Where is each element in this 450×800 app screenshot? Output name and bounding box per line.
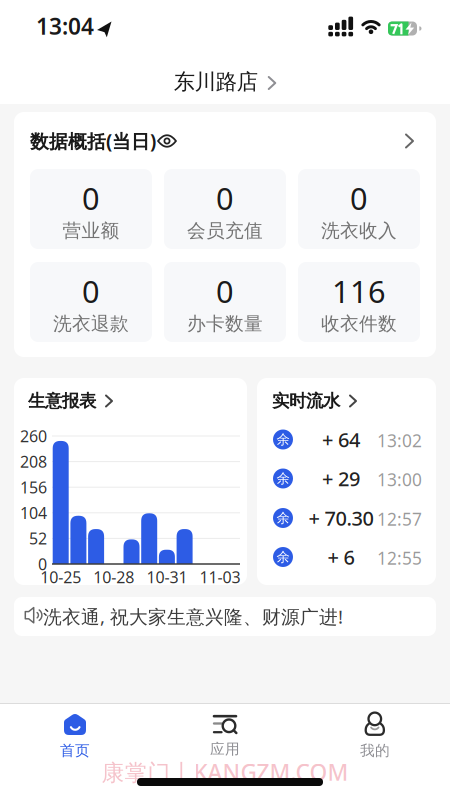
staticText: 办卡数量 (187, 312, 263, 335)
staticText: 0 (216, 178, 234, 218)
staticText: 康掌门丨KANGZM.COM (101, 757, 348, 787)
staticText: 余 (276, 431, 289, 448)
staticText: 余 (276, 549, 289, 565)
button[interactable]: 生意报表 (28, 390, 113, 412)
staticText: 洗衣收入 (321, 219, 397, 242)
staticText: 10-28 (93, 566, 134, 588)
staticText: 12:57 (377, 507, 422, 530)
staticText: 余 (276, 470, 289, 487)
staticText: 12:55 (377, 546, 422, 569)
button[interactable]: 应用 (165, 708, 285, 764)
staticText: 0 (82, 271, 100, 311)
staticText: + 29 (322, 465, 360, 492)
staticText: 52 (29, 528, 47, 549)
staticText: 260 (20, 425, 47, 447)
staticText: 我的 (360, 741, 390, 759)
button[interactable]: 东川路店 (174, 67, 276, 97)
staticText: 104 (20, 502, 47, 523)
button[interactable]: 数据概括(当日) (30, 129, 414, 153)
staticText: 0 (350, 178, 368, 218)
staticText: 13:04 (36, 11, 94, 41)
staticText: 生意报表 (28, 390, 96, 412)
staticText: 0 (38, 553, 47, 575)
staticText: 余 (276, 510, 289, 526)
staticText: 实时流水 (272, 390, 340, 412)
staticText: + 64 (322, 426, 360, 453)
staticText: + 70.30 (308, 505, 373, 531)
staticText: 208 (20, 451, 47, 472)
staticText: 11-03 (199, 566, 240, 588)
staticText: 10-25 (40, 566, 81, 588)
staticText: 13:02 (377, 429, 422, 452)
staticText: 洗衣通, 祝大家生意兴隆、财源广进! (43, 604, 343, 629)
staticText: 156 (20, 477, 47, 498)
staticText: 0 (82, 178, 100, 218)
staticText: 洗衣退款 (53, 312, 129, 335)
button[interactable]: 我的 (315, 708, 435, 764)
staticText: 数据概括(当日) (30, 129, 156, 153)
staticText: 10-31 (146, 566, 187, 588)
button[interactable]: 首页 (15, 708, 135, 764)
button[interactable]: 实时流水 (272, 390, 357, 412)
staticText: 0 (216, 271, 234, 311)
staticText: + 6 (327, 544, 354, 570)
staticText: 会员充值 (187, 219, 263, 242)
staticText: 营业额 (62, 219, 119, 242)
staticText: 13:00 (377, 468, 422, 491)
staticText: 116 (332, 271, 386, 311)
button[interactable]: 洗衣通, 祝大家生意兴隆、财源广进! (14, 597, 436, 636)
staticText: 首页 (60, 741, 90, 759)
staticText: 应用 (210, 740, 240, 758)
staticText: 收衣件数 (321, 312, 397, 335)
staticText: 东川路店 (174, 69, 258, 95)
